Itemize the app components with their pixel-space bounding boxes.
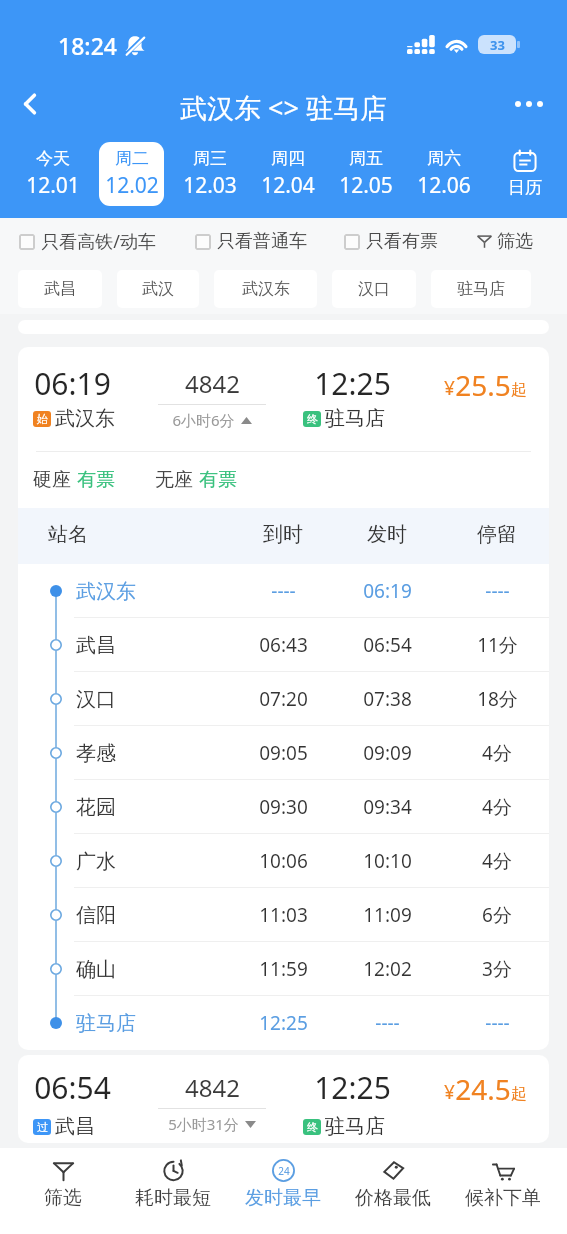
- button[interactable]: 筛选: [477, 230, 533, 253]
- staticText: 有票: [77, 468, 115, 492]
- staticText: 驻马店: [325, 406, 385, 431]
- button[interactable]: 武汉东: [214, 270, 317, 308]
- staticText: 6分: [482, 902, 512, 928]
- button[interactable]: 驻马店: [18, 996, 549, 1050]
- staticText: 起: [511, 1084, 527, 1104]
- button[interactable]: 武昌: [18, 270, 102, 308]
- staticText: 筛选: [44, 1186, 82, 1210]
- staticText: 始: [37, 412, 48, 426]
- staticText: 4842: [185, 367, 240, 400]
- staticText: 09:30: [259, 794, 308, 820]
- button[interactable]: 筛选: [8, 1148, 118, 1234]
- button[interactable]: 24: [228, 1148, 338, 1234]
- button[interactable]: 周六: [412, 142, 476, 206]
- staticText: 武汉: [142, 279, 174, 299]
- button[interactable]: 武汉: [117, 270, 199, 308]
- staticText: 发时: [367, 522, 407, 547]
- staticText: 10:10: [363, 848, 412, 874]
- staticText: 确山: [76, 957, 116, 982]
- staticText: 汉口: [358, 279, 390, 299]
- button[interactable]: 汉口: [18, 672, 549, 726]
- button[interactable]: 汉口: [332, 270, 416, 308]
- staticText: 汉口: [76, 687, 116, 712]
- staticText: 花园: [76, 795, 116, 820]
- button[interactable]: 只看普通车: [195, 230, 307, 253]
- staticText: 武昌: [55, 1114, 95, 1139]
- staticText: 33: [490, 36, 505, 54]
- staticText: 12:25: [314, 1067, 391, 1108]
- button[interactable]: 武汉东: [18, 564, 549, 618]
- staticText: 11:03: [259, 902, 308, 928]
- staticText: 日历: [508, 177, 542, 198]
- button[interactable]: 广水: [18, 834, 549, 888]
- button[interactable]: Back: [8, 82, 52, 126]
- staticText: 12:02: [363, 956, 412, 982]
- staticText: 有票: [199, 468, 237, 492]
- staticText: 武昌: [76, 633, 116, 658]
- staticText: 终: [307, 1120, 318, 1134]
- button[interactable]: 周三: [178, 142, 242, 206]
- staticText: ¥: [444, 1079, 455, 1105]
- staticText: 到时: [263, 522, 303, 547]
- button[interactable]: 信阳: [18, 888, 549, 942]
- staticText: ----: [485, 578, 510, 604]
- staticText: 终: [307, 412, 318, 426]
- staticText: 筛选: [497, 230, 533, 253]
- staticText: 驻马店: [457, 279, 505, 299]
- staticText: 站名: [48, 522, 88, 547]
- button[interactable]: 孝感: [18, 726, 549, 780]
- staticText: 过: [37, 1120, 48, 1134]
- staticText: 周四: [271, 148, 305, 169]
- staticText: 11:09: [363, 902, 412, 928]
- staticText: 12:25: [314, 363, 391, 404]
- staticText: 只看普通车: [217, 230, 307, 253]
- staticText: 12.06: [417, 171, 471, 200]
- button[interactable]: More options: [507, 82, 551, 126]
- staticText: 5小时31分: [168, 1114, 239, 1134]
- button[interactable]: 价格最低: [338, 1148, 448, 1234]
- staticText: 广水: [76, 849, 116, 874]
- staticText: 只看有票: [366, 230, 438, 253]
- button[interactable]: 只看有票: [344, 230, 438, 253]
- staticText: 耗时最短: [135, 1186, 211, 1210]
- button[interactable]: 武昌: [18, 618, 549, 672]
- staticText: 6小时6分: [172, 410, 235, 430]
- button[interactable]: 今天: [20, 142, 85, 206]
- staticText: 今天: [36, 148, 70, 169]
- staticText: 孝感: [76, 741, 116, 766]
- staticText: 周五: [349, 148, 383, 169]
- button[interactable]: 周五: [334, 142, 398, 206]
- staticText: 06:54: [363, 632, 412, 658]
- staticText: 09:05: [259, 740, 308, 766]
- staticText: 候补下单: [465, 1186, 541, 1210]
- staticText: 无座: [155, 468, 193, 492]
- staticText: 06:54: [34, 1067, 111, 1108]
- staticText: ¥: [444, 375, 455, 401]
- staticText: 12.02: [105, 171, 159, 200]
- staticText: 06:19: [363, 578, 412, 604]
- staticText: 驻马店: [325, 1114, 385, 1139]
- button[interactable]: 周四: [256, 142, 320, 206]
- staticText: 24.5: [455, 1070, 511, 1108]
- staticText: 4分: [482, 740, 512, 766]
- button[interactable]: 耗时最短: [118, 1148, 228, 1234]
- button[interactable]: 驻马店: [431, 270, 531, 308]
- staticText: 11:59: [259, 956, 308, 982]
- staticText: 发时最早: [245, 1186, 321, 1210]
- button[interactable]: 花园: [18, 780, 549, 834]
- staticText: 价格最低: [355, 1186, 431, 1210]
- staticText: 信阳: [76, 903, 116, 928]
- staticText: 12.01: [26, 171, 80, 200]
- staticText: 12.03: [183, 171, 237, 200]
- staticText: 武汉东: [76, 579, 136, 604]
- button[interactable]: 候补下单: [448, 1148, 558, 1234]
- button[interactable]: 日历: [483, 142, 567, 206]
- staticText: 12.04: [261, 171, 315, 200]
- button[interactable]: 周二: [99, 142, 164, 206]
- button[interactable]: 只看高铁/动车: [19, 229, 156, 254]
- staticText: 起: [511, 380, 527, 400]
- staticText: ----: [271, 578, 296, 604]
- staticText: 07:38: [363, 686, 412, 712]
- staticText: 停留: [477, 522, 517, 547]
- button[interactable]: 确山: [18, 942, 549, 996]
